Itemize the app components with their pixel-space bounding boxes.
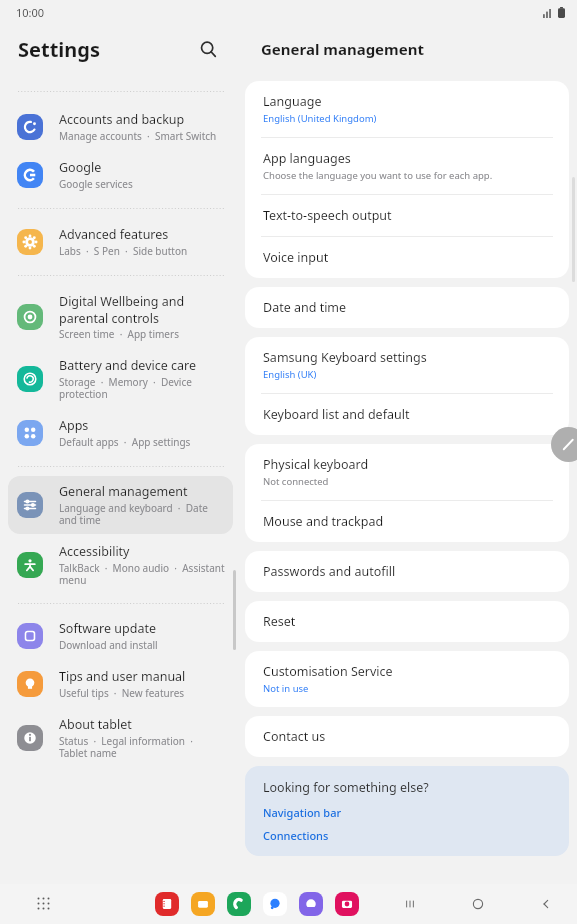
staticText: Google xyxy=(59,159,102,176)
button[interactable]: Software update xyxy=(8,613,233,659)
button[interactable]: Connections xyxy=(263,828,329,843)
staticText: 10:00 xyxy=(16,5,45,20)
staticText: Language xyxy=(263,93,322,110)
button[interactable]: Language xyxy=(245,81,569,137)
staticText: Connections xyxy=(263,828,329,843)
button[interactable]: Battery and device care xyxy=(8,350,233,408)
button[interactable]: Edit xyxy=(551,427,577,462)
staticText: Voice input xyxy=(263,249,329,266)
button[interactable]: Passwords and autofill xyxy=(245,551,569,592)
staticText: Reset xyxy=(263,613,296,630)
button[interactable]: Reset xyxy=(245,601,569,642)
button[interactable]: General management xyxy=(8,476,233,534)
staticText: Contact us xyxy=(263,728,326,745)
staticText: Google services xyxy=(59,177,133,191)
button[interactable]: App 5 xyxy=(335,892,359,916)
button[interactable]: App 4 xyxy=(299,892,323,916)
button[interactable]: Tips and user manual xyxy=(8,661,233,707)
staticText: Looking for something else? xyxy=(263,779,429,796)
button[interactable]: Keyboard list and default xyxy=(245,394,569,435)
button[interactable]: Digital Wellbeing and parental controls xyxy=(8,286,233,348)
staticText: Storage · Memory · Device protection xyxy=(59,375,225,401)
staticText: Battery and device care xyxy=(59,357,197,374)
button[interactable]: Contact us xyxy=(245,716,569,757)
staticText: Default apps · App settings xyxy=(59,435,191,449)
staticText: Text-to-speech output xyxy=(263,207,392,224)
staticText: Choose the language you want to use for … xyxy=(263,169,493,182)
staticText: Manage accounts · Smart Switch xyxy=(59,129,217,143)
staticText: About tablet xyxy=(59,716,132,733)
button[interactable]: Navigation bar xyxy=(263,805,342,820)
button[interactable]: Samsung Keyboard settings xyxy=(245,337,569,393)
staticText: Accessibility xyxy=(59,543,130,560)
staticText: Settings xyxy=(18,36,100,63)
staticText: TalkBack · Mono audio · Assistant menu xyxy=(59,561,225,587)
staticText: Samsung Keyboard settings xyxy=(263,349,427,366)
button[interactable]: Apps xyxy=(8,410,233,456)
staticText: App languages xyxy=(263,150,351,167)
staticText: Download and install xyxy=(59,638,158,652)
button[interactable]: recents xyxy=(397,891,423,917)
staticText: Advanced features xyxy=(59,226,169,243)
staticText: Digital Wellbeing and parental controls xyxy=(59,293,225,326)
staticText: Customisation Service xyxy=(263,663,393,680)
staticText: Not connected xyxy=(263,475,329,488)
button[interactable]: App languages xyxy=(245,138,569,194)
button[interactable]: App 3 xyxy=(263,892,287,916)
staticText: Navigation bar xyxy=(263,805,342,820)
button[interactable]: Search xyxy=(193,34,223,64)
button[interactable]: About tablet xyxy=(8,709,233,767)
staticText: General management xyxy=(59,483,188,500)
staticText: English (United Kingdom) xyxy=(263,112,377,125)
staticText: Software update xyxy=(59,620,156,637)
staticText: English (UK) xyxy=(263,368,317,381)
button[interactable]: App 1 xyxy=(191,892,215,916)
button[interactable]: Advanced features xyxy=(8,219,233,265)
button[interactable]: App 0 xyxy=(155,892,179,916)
button[interactable]: home xyxy=(465,891,491,917)
staticText: Screen time · App timers xyxy=(59,327,179,341)
button[interactable]: Text-to-speech output xyxy=(245,195,569,236)
button[interactable]: Mouse and trackpad xyxy=(245,501,569,542)
button[interactable]: Physical keyboard xyxy=(245,444,569,500)
staticText: Useful tips · New features xyxy=(59,686,185,700)
staticText: General management xyxy=(261,39,424,59)
staticText: Apps xyxy=(59,417,89,434)
button[interactable]: Accessibility xyxy=(8,536,233,594)
button[interactable]: Date and time xyxy=(245,287,569,328)
button[interactable]: Google xyxy=(8,152,233,198)
button[interactable]: All apps xyxy=(30,890,58,918)
staticText: Not in use xyxy=(263,682,309,695)
staticText: Date and time xyxy=(263,299,347,316)
staticText: Accounts and backup xyxy=(59,111,185,128)
button[interactable]: back xyxy=(533,891,559,917)
staticText: Keyboard list and default xyxy=(263,406,410,423)
button[interactable]: App 2 xyxy=(227,892,251,916)
button[interactable]: Accounts and backup xyxy=(8,104,233,150)
staticText: Language and keyboard · Date and time xyxy=(59,501,225,527)
button[interactable]: Voice input xyxy=(245,237,569,278)
staticText: Mouse and trackpad xyxy=(263,513,384,530)
button[interactable]: Customisation Service xyxy=(245,651,569,707)
staticText: Labs · S Pen · Side button xyxy=(59,244,188,258)
staticText: Physical keyboard xyxy=(263,456,369,473)
staticText: Tips and user manual xyxy=(59,668,186,685)
staticText: Status · Legal information · Tablet name xyxy=(59,734,225,760)
staticText: Passwords and autofill xyxy=(263,563,396,580)
